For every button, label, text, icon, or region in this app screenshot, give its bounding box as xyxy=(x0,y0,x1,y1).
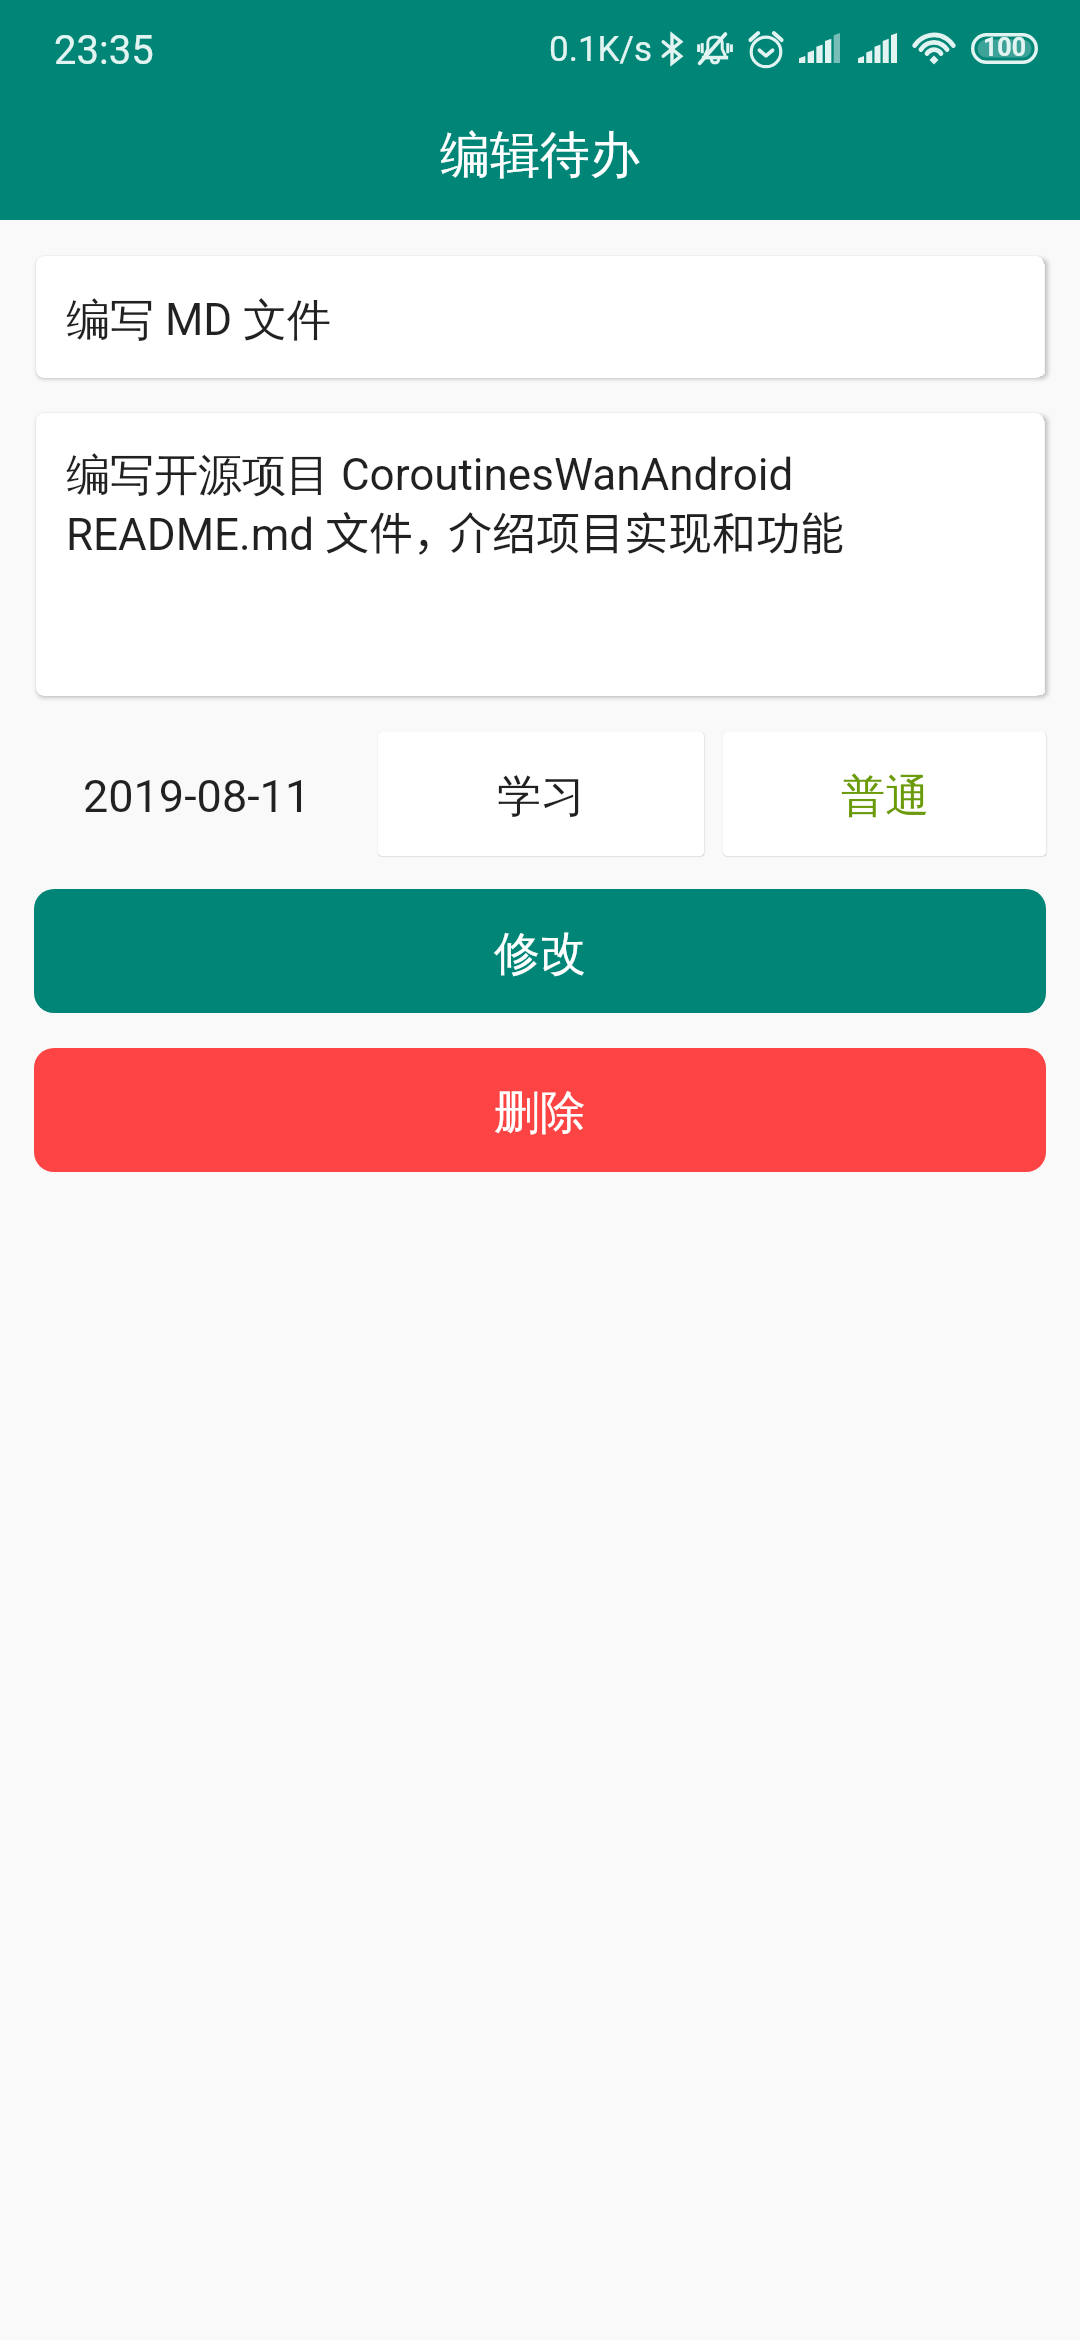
other: Signal 2 xyxy=(858,33,897,63)
staticText: 编写开源项目 CoroutinesWanAndroid README.md 文件… xyxy=(66,448,1014,563)
other: Bluetooth xyxy=(662,28,682,70)
other: Battery 100% xyxy=(971,33,1038,64)
staticText: 编辑待办 xyxy=(440,124,640,187)
other: Silent mode xyxy=(697,28,733,70)
staticText: 修改 xyxy=(494,925,586,983)
button[interactable]: 编写 MD 文件 xyxy=(36,256,1044,378)
button[interactable]: 2019-08-11 xyxy=(34,732,360,856)
staticText: 23:35 xyxy=(54,27,154,74)
staticText: 学习 xyxy=(497,769,585,824)
button[interactable]: 编写开源项目 CoroutinesWanAndroid README.md 文件… xyxy=(36,413,1044,696)
staticText: 编写 MD 文件 xyxy=(66,293,332,348)
staticText: 0.1K/s xyxy=(549,29,653,70)
other: Alarm xyxy=(749,31,783,68)
staticText: 100 xyxy=(983,33,1027,62)
other: Wi-Fi xyxy=(912,29,956,67)
staticText: 普通 xyxy=(841,769,929,824)
button[interactable]: 学习 xyxy=(378,732,704,856)
button[interactable]: 普通 xyxy=(723,732,1046,856)
other: Signal 1 xyxy=(799,33,840,63)
button[interactable]: 修改 xyxy=(34,889,1046,1013)
button[interactable]: 删除 xyxy=(34,1048,1046,1172)
staticText: 2019-08-11 xyxy=(83,770,311,823)
staticText: 删除 xyxy=(494,1084,586,1142)
